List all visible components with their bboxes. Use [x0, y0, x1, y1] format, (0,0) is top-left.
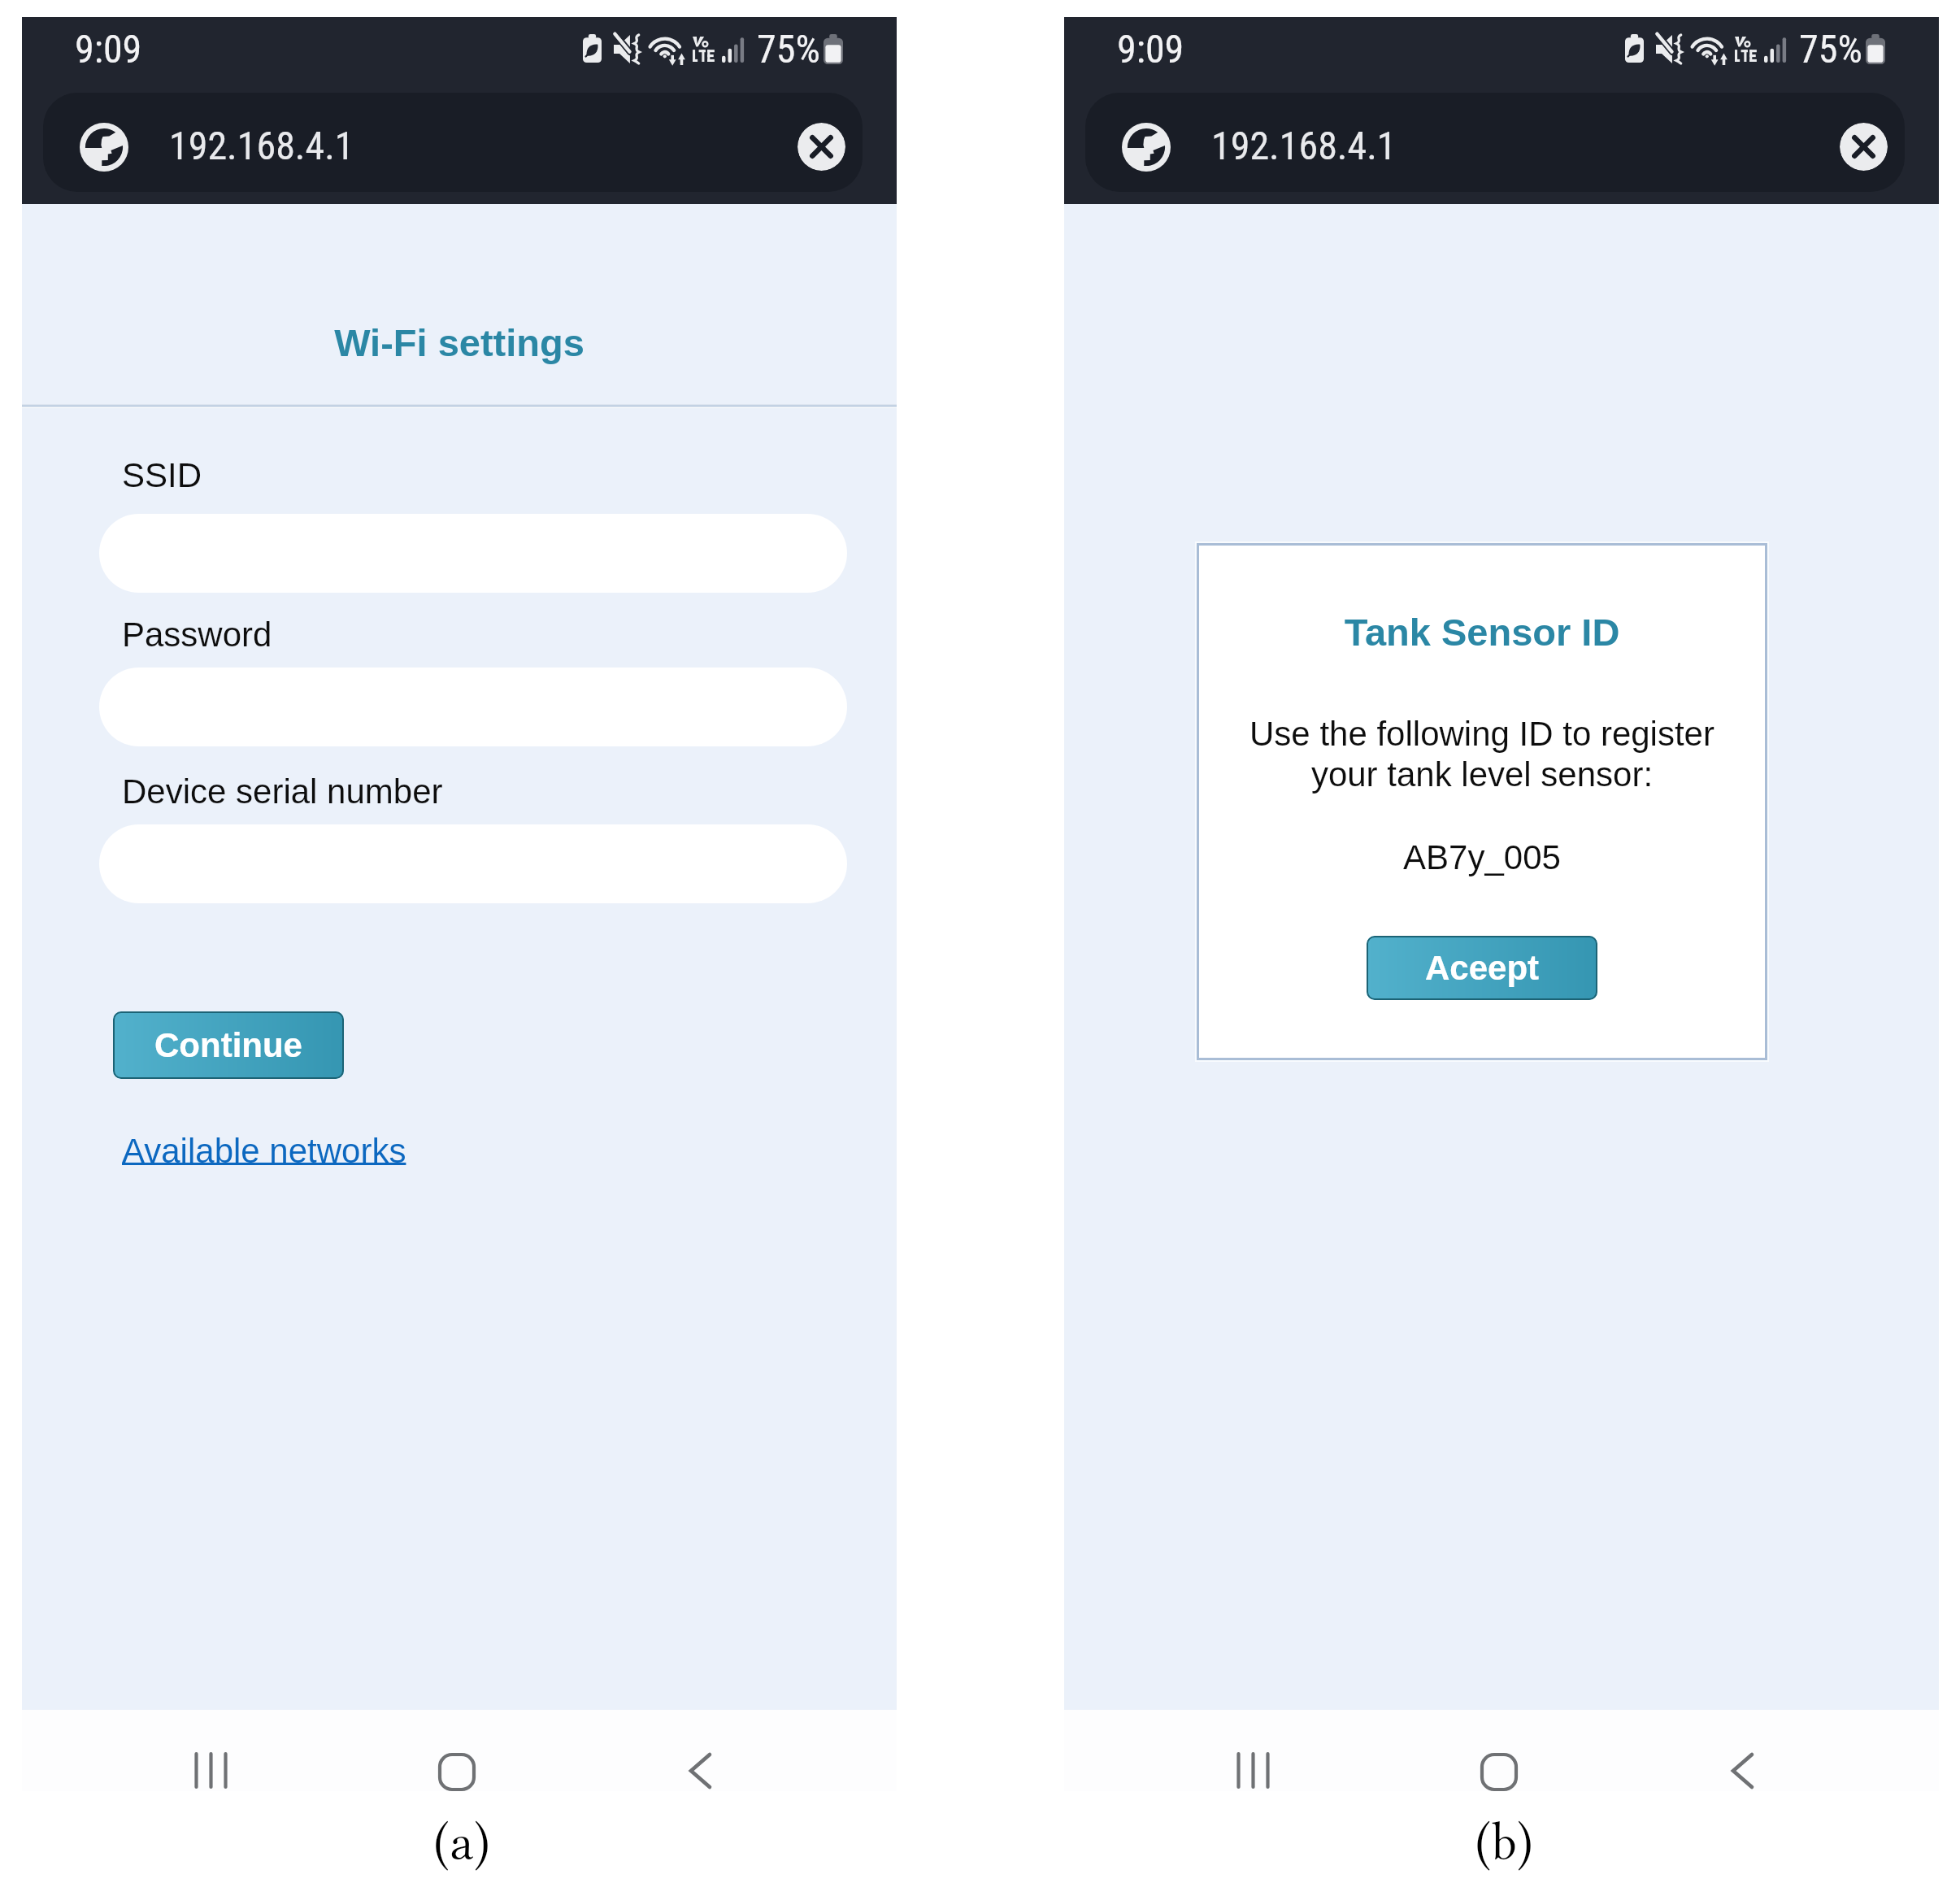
- button[interactable]: Recent apps: [179, 1737, 244, 1804]
- button[interactable]: Close tab: [797, 123, 845, 171]
- staticText: Available networks: [122, 1132, 406, 1170]
- button[interactable]: Back: [675, 1737, 740, 1804]
- button[interactable]: Home: [1464, 1737, 1531, 1805]
- button[interactable]: Close tab: [1840, 123, 1888, 171]
- button[interactable]: Continue: [113, 1011, 344, 1079]
- staticText: 192.168.4.1: [169, 123, 354, 168]
- staticText: 75%: [1799, 26, 1862, 72]
- staticText: 9:09: [1117, 26, 1184, 72]
- staticText: Continue: [154, 1026, 302, 1064]
- staticText: Wi-Fi settings: [22, 321, 897, 364]
- button[interactable]: Aceept: [1367, 936, 1597, 1000]
- button[interactable]: Home: [422, 1737, 489, 1805]
- staticText: Device serial number: [122, 772, 443, 811]
- staticText: 192.168.4.1: [1211, 123, 1397, 168]
- staticText: Use the following ID to register your ta…: [1197, 715, 1767, 794]
- staticText: 9:09: [75, 26, 142, 72]
- staticText: (b): [1423, 1811, 1585, 1872]
- staticText: Aceept: [1425, 949, 1540, 987]
- staticText: 75%: [757, 26, 820, 72]
- button[interactable]: Address bar, 192.168.4.1: [1085, 93, 1905, 192]
- button[interactable]: Recent apps: [1221, 1737, 1286, 1804]
- button[interactable]: Device serial number input: [99, 824, 847, 903]
- staticText: AB7y_005: [1197, 838, 1767, 876]
- staticText: SSID: [122, 456, 202, 494]
- staticText: Tank Sensor ID: [1197, 611, 1767, 654]
- staticText: (a): [380, 1811, 543, 1872]
- button[interactable]: Back: [1717, 1737, 1782, 1804]
- button[interactable]: Address bar, 192.168.4.1: [43, 93, 863, 192]
- button[interactable]: Available networks: [122, 1132, 406, 1170]
- staticText: Password: [122, 615, 272, 654]
